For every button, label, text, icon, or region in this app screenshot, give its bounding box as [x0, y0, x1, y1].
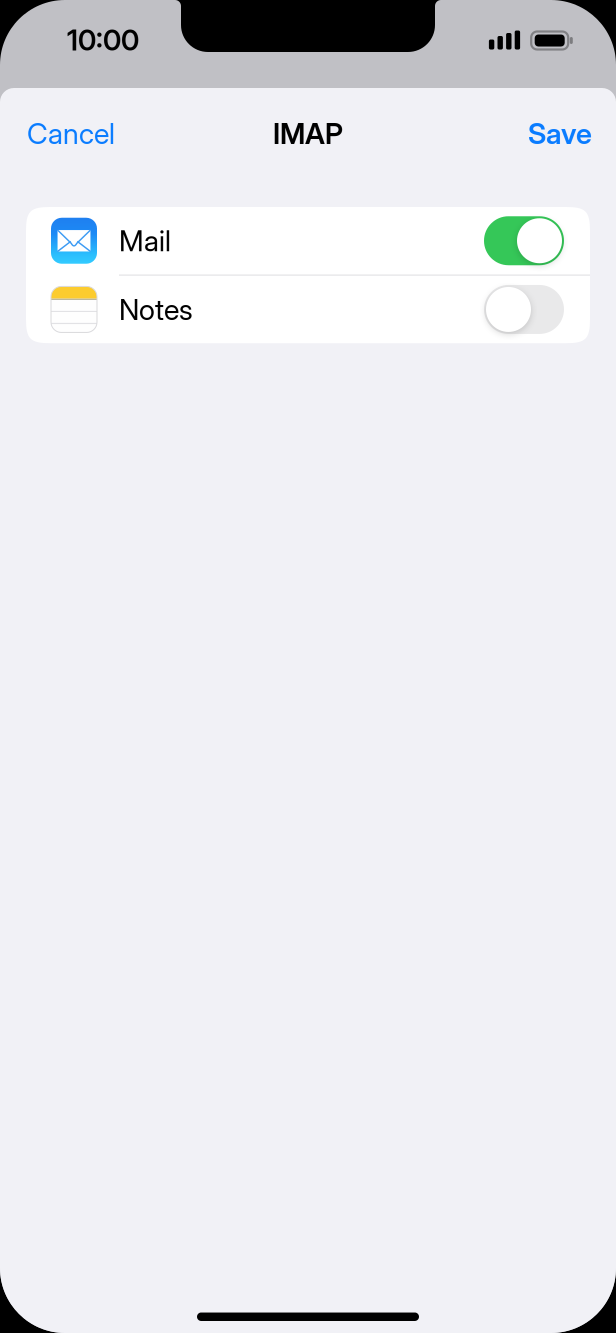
button[interactable]: Mail [26, 207, 590, 274]
staticText: Save [528, 116, 592, 151]
staticText: Notes [119, 292, 193, 327]
staticText: Cancel [27, 116, 115, 151]
button[interactable]: Save [528, 104, 592, 163]
staticText: IMAP [273, 116, 343, 151]
button[interactable]: Cancel [27, 104, 115, 163]
button[interactable]: Notes [26, 276, 590, 343]
staticText: 10:00 [67, 23, 139, 57]
staticText: Mail [119, 223, 171, 258]
